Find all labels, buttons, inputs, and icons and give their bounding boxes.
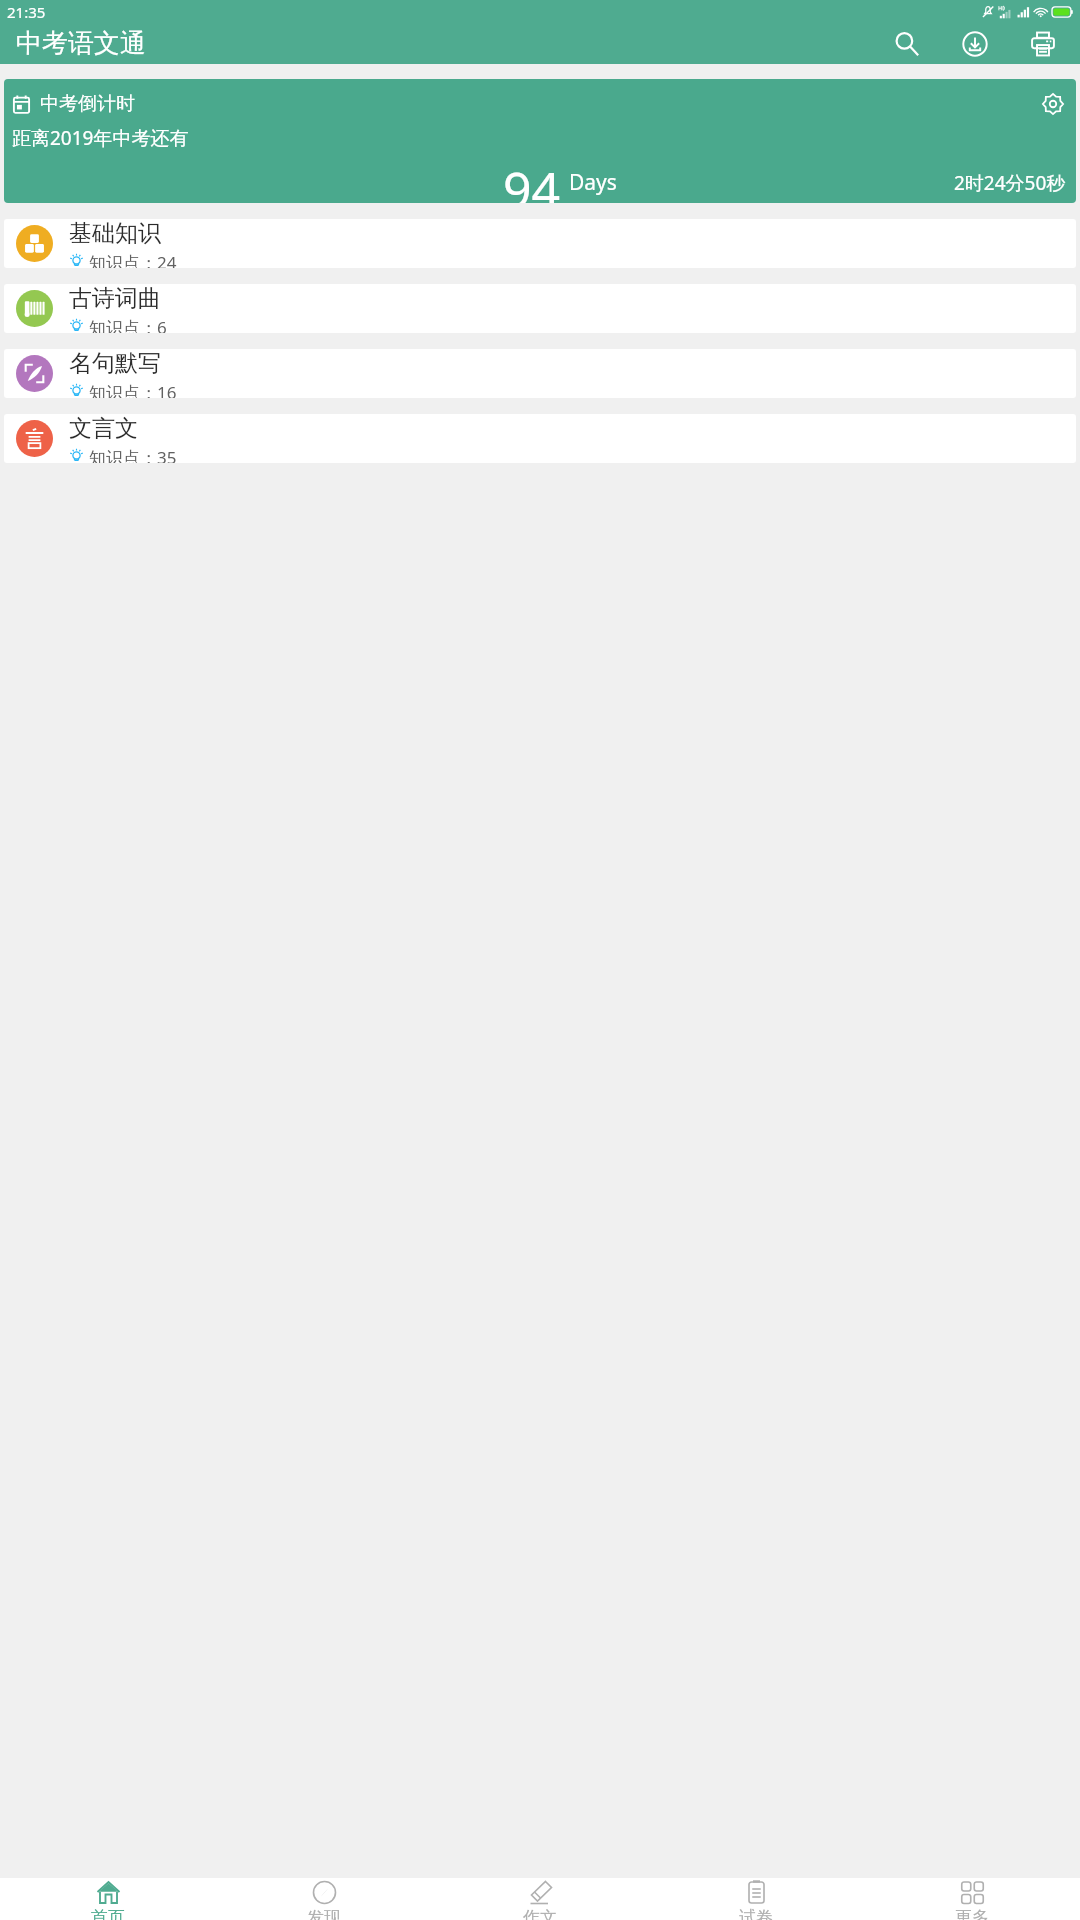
button[interactable]: Search xyxy=(884,23,930,64)
button[interactable]: 名句默写 xyxy=(4,349,1076,398)
staticText: 知识点：16 xyxy=(89,381,177,398)
staticText: 更多 xyxy=(955,1907,989,1920)
staticText: Days xyxy=(569,168,617,197)
button[interactable]: Download xyxy=(952,23,998,64)
button[interactable]: 发现 xyxy=(216,1878,432,1920)
button[interactable]: 作文 xyxy=(432,1878,648,1920)
button[interactable]: 文言文 xyxy=(4,414,1076,463)
staticText: 21:35 xyxy=(7,2,46,22)
staticText: 知识点：6 xyxy=(89,316,167,333)
button[interactable]: 首页 xyxy=(0,1878,216,1920)
staticText: 知识点：24 xyxy=(89,251,177,268)
button[interactable]: 基础知识 xyxy=(4,219,1076,268)
button[interactable]: 试卷 xyxy=(648,1878,864,1920)
staticText: 古诗词曲 xyxy=(69,284,161,313)
staticText: 距离2019年中考还有 xyxy=(12,125,189,151)
staticText: 中考倒计时 xyxy=(40,92,135,116)
button[interactable]: Settings xyxy=(1038,89,1068,119)
staticText: 知识点：35 xyxy=(89,446,177,463)
staticText: 首页 xyxy=(91,1907,125,1920)
staticText: 94 xyxy=(503,155,561,203)
staticText: 文言文 xyxy=(69,414,138,443)
staticText: 试卷 xyxy=(739,1907,773,1920)
button[interactable]: Print xyxy=(1020,23,1066,64)
staticText: 发现 xyxy=(307,1907,341,1920)
staticText: 基础知识 xyxy=(69,219,161,248)
staticText: 中考语文通 xyxy=(16,27,146,60)
staticText: 作文 xyxy=(523,1907,557,1920)
button[interactable]: 古诗词曲 xyxy=(4,284,1076,333)
button[interactable]: 中考倒计时 xyxy=(4,79,1076,203)
staticText: 名句默写 xyxy=(69,349,161,378)
staticText: 2时24分50秒 xyxy=(954,170,1066,196)
button[interactable]: 更多 xyxy=(864,1878,1080,1920)
